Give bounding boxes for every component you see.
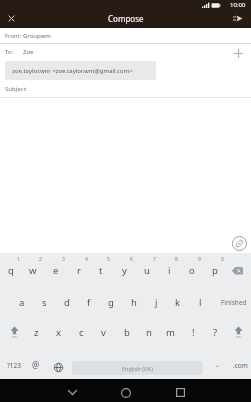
button[interactable] <box>50 355 67 379</box>
button[interactable] <box>3 10 19 26</box>
staticText: v <box>101 326 106 339</box>
staticText: s <box>42 296 47 309</box>
button[interactable] <box>229 44 247 62</box>
button[interactable] <box>3 317 25 347</box>
staticText: k <box>175 296 181 309</box>
staticText: i <box>168 264 171 277</box>
button[interactable]: s <box>33 287 55 317</box>
button[interactable]: ? <box>205 317 226 347</box>
staticText: . <box>216 357 219 369</box>
button[interactable]: Finished <box>212 287 251 317</box>
button[interactable]: ! <box>183 317 204 347</box>
staticText: 8 <box>175 256 178 263</box>
staticText: o <box>189 264 195 277</box>
staticText: @ <box>32 359 40 370</box>
button[interactable] <box>230 234 248 252</box>
button[interactable]: .com <box>228 350 251 380</box>
staticText: 1 <box>17 256 20 263</box>
staticText: ! <box>192 326 195 339</box>
staticText: d <box>64 296 70 309</box>
staticText: y <box>122 264 127 277</box>
button[interactable]: z <box>26 317 47 347</box>
staticText: m <box>166 326 175 339</box>
button[interactable]: e <box>45 255 67 285</box>
staticText: From: <box>5 32 22 40</box>
button[interactable]: h <box>123 287 145 317</box>
button[interactable]: t <box>90 255 112 285</box>
staticText: Compose <box>108 13 144 24</box>
staticText: w <box>29 264 37 277</box>
button[interactable]: a <box>11 287 33 317</box>
button[interactable]: . <box>210 348 224 378</box>
button[interactable]: l <box>189 287 211 317</box>
button[interactable]: g <box>100 287 122 317</box>
button[interactable] <box>58 383 86 402</box>
button[interactable]: i <box>158 255 180 285</box>
staticText: Groupwm <box>23 32 51 40</box>
button[interactable]: zoe.taylor.wm <zoe.taylor.wm@gmail.com> <box>5 61 156 80</box>
button[interactable]: p <box>204 255 226 285</box>
staticText: English (UK) <box>122 365 153 372</box>
staticText: 4 <box>85 256 88 263</box>
staticText: h <box>131 296 137 309</box>
staticText: Subject: <box>5 85 28 93</box>
staticText: zoe.taylor.wm <zoe.taylor.wm@gmail.com> <box>12 67 133 75</box>
staticText: 7 <box>153 256 156 263</box>
staticText: 2 <box>39 256 42 263</box>
staticText: e <box>53 264 59 277</box>
button[interactable]: x <box>48 317 69 347</box>
button[interactable]: ?123 <box>1 350 27 380</box>
staticText: 10:00 <box>230 1 246 9</box>
staticText: q <box>8 264 14 277</box>
staticText: Zoe <box>23 48 34 56</box>
staticText: t <box>99 264 103 277</box>
staticText: 3 <box>62 256 65 263</box>
staticText: j <box>155 296 158 309</box>
staticText: 9 <box>198 256 201 263</box>
staticText: ?123 <box>7 361 21 370</box>
staticText: To: <box>5 48 14 56</box>
staticText: a <box>19 296 25 309</box>
staticText: .com <box>233 361 248 370</box>
button[interactable]: q <box>0 255 22 285</box>
staticText: f <box>87 296 91 309</box>
button[interactable]: c <box>71 317 92 347</box>
button[interactable] <box>228 10 248 26</box>
button[interactable]: English (UK) <box>72 361 203 375</box>
staticText: c <box>79 326 84 339</box>
button[interactable]: f <box>78 287 100 317</box>
button[interactable] <box>112 383 140 402</box>
staticText: g <box>108 296 114 309</box>
button[interactable]: v <box>93 317 114 347</box>
staticText: n <box>146 326 152 339</box>
button[interactable]: o <box>181 255 203 285</box>
staticText: u <box>144 264 150 277</box>
button[interactable]: w <box>22 255 44 285</box>
staticText: l <box>199 296 202 309</box>
button[interactable]: j <box>145 287 167 317</box>
button[interactable]: r <box>68 255 90 285</box>
button[interactable]: b <box>116 317 137 347</box>
staticText: z <box>34 326 39 339</box>
staticText: 6 <box>130 256 133 263</box>
button[interactable] <box>166 383 194 402</box>
button[interactable] <box>224 256 251 285</box>
button[interactable]: @ <box>27 349 45 379</box>
button[interactable]: k <box>167 287 189 317</box>
staticText: ? <box>213 326 218 339</box>
staticText: 5 <box>107 256 110 263</box>
button[interactable]: n <box>138 317 159 347</box>
button[interactable]: y <box>113 255 135 285</box>
button[interactable]: m <box>160 317 181 347</box>
staticText: p <box>212 264 218 277</box>
staticText: x <box>56 326 62 339</box>
staticText: r <box>77 264 81 277</box>
button[interactable]: d <box>56 287 78 317</box>
button[interactable]: u <box>136 255 158 285</box>
staticText: Finished <box>221 298 247 307</box>
staticText: b <box>124 326 130 339</box>
button[interactable] <box>227 317 249 347</box>
staticText: 0 <box>221 256 224 263</box>
